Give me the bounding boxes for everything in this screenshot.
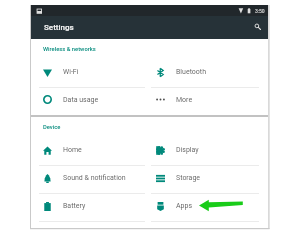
button[interactable]: Display bbox=[144, 138, 257, 166]
button[interactable]: More bbox=[144, 88, 257, 115]
staticText: Data usage bbox=[63, 96, 99, 104]
staticText: More bbox=[176, 96, 193, 104]
staticText: Settings bbox=[44, 23, 74, 32]
button[interactable]: Home bbox=[31, 138, 144, 166]
staticText: Display bbox=[176, 146, 199, 154]
button[interactable]: Data usage bbox=[31, 88, 144, 115]
staticText: Battery bbox=[63, 202, 86, 210]
staticText: Storage bbox=[176, 174, 201, 182]
staticText: Home bbox=[63, 146, 82, 154]
staticText: Device bbox=[43, 124, 61, 131]
staticText: 3:50 bbox=[255, 8, 265, 14]
staticText: Bluetooth bbox=[176, 68, 206, 76]
button[interactable]: Battery bbox=[31, 194, 144, 222]
staticText: Apps bbox=[176, 202, 193, 210]
button[interactable]: Search bbox=[250, 19, 267, 36]
staticText: Wireless & networks bbox=[43, 46, 96, 53]
button[interactable]: Sound & notification bbox=[31, 166, 144, 194]
button[interactable]: Storage bbox=[144, 166, 257, 194]
staticText: Wi-Fi bbox=[63, 68, 79, 76]
button[interactable]: Apps bbox=[144, 194, 257, 222]
button[interactable]: Bluetooth bbox=[144, 60, 257, 88]
staticText: Sound & notification bbox=[63, 174, 126, 182]
button[interactable]: Wi-Fi bbox=[31, 60, 144, 88]
